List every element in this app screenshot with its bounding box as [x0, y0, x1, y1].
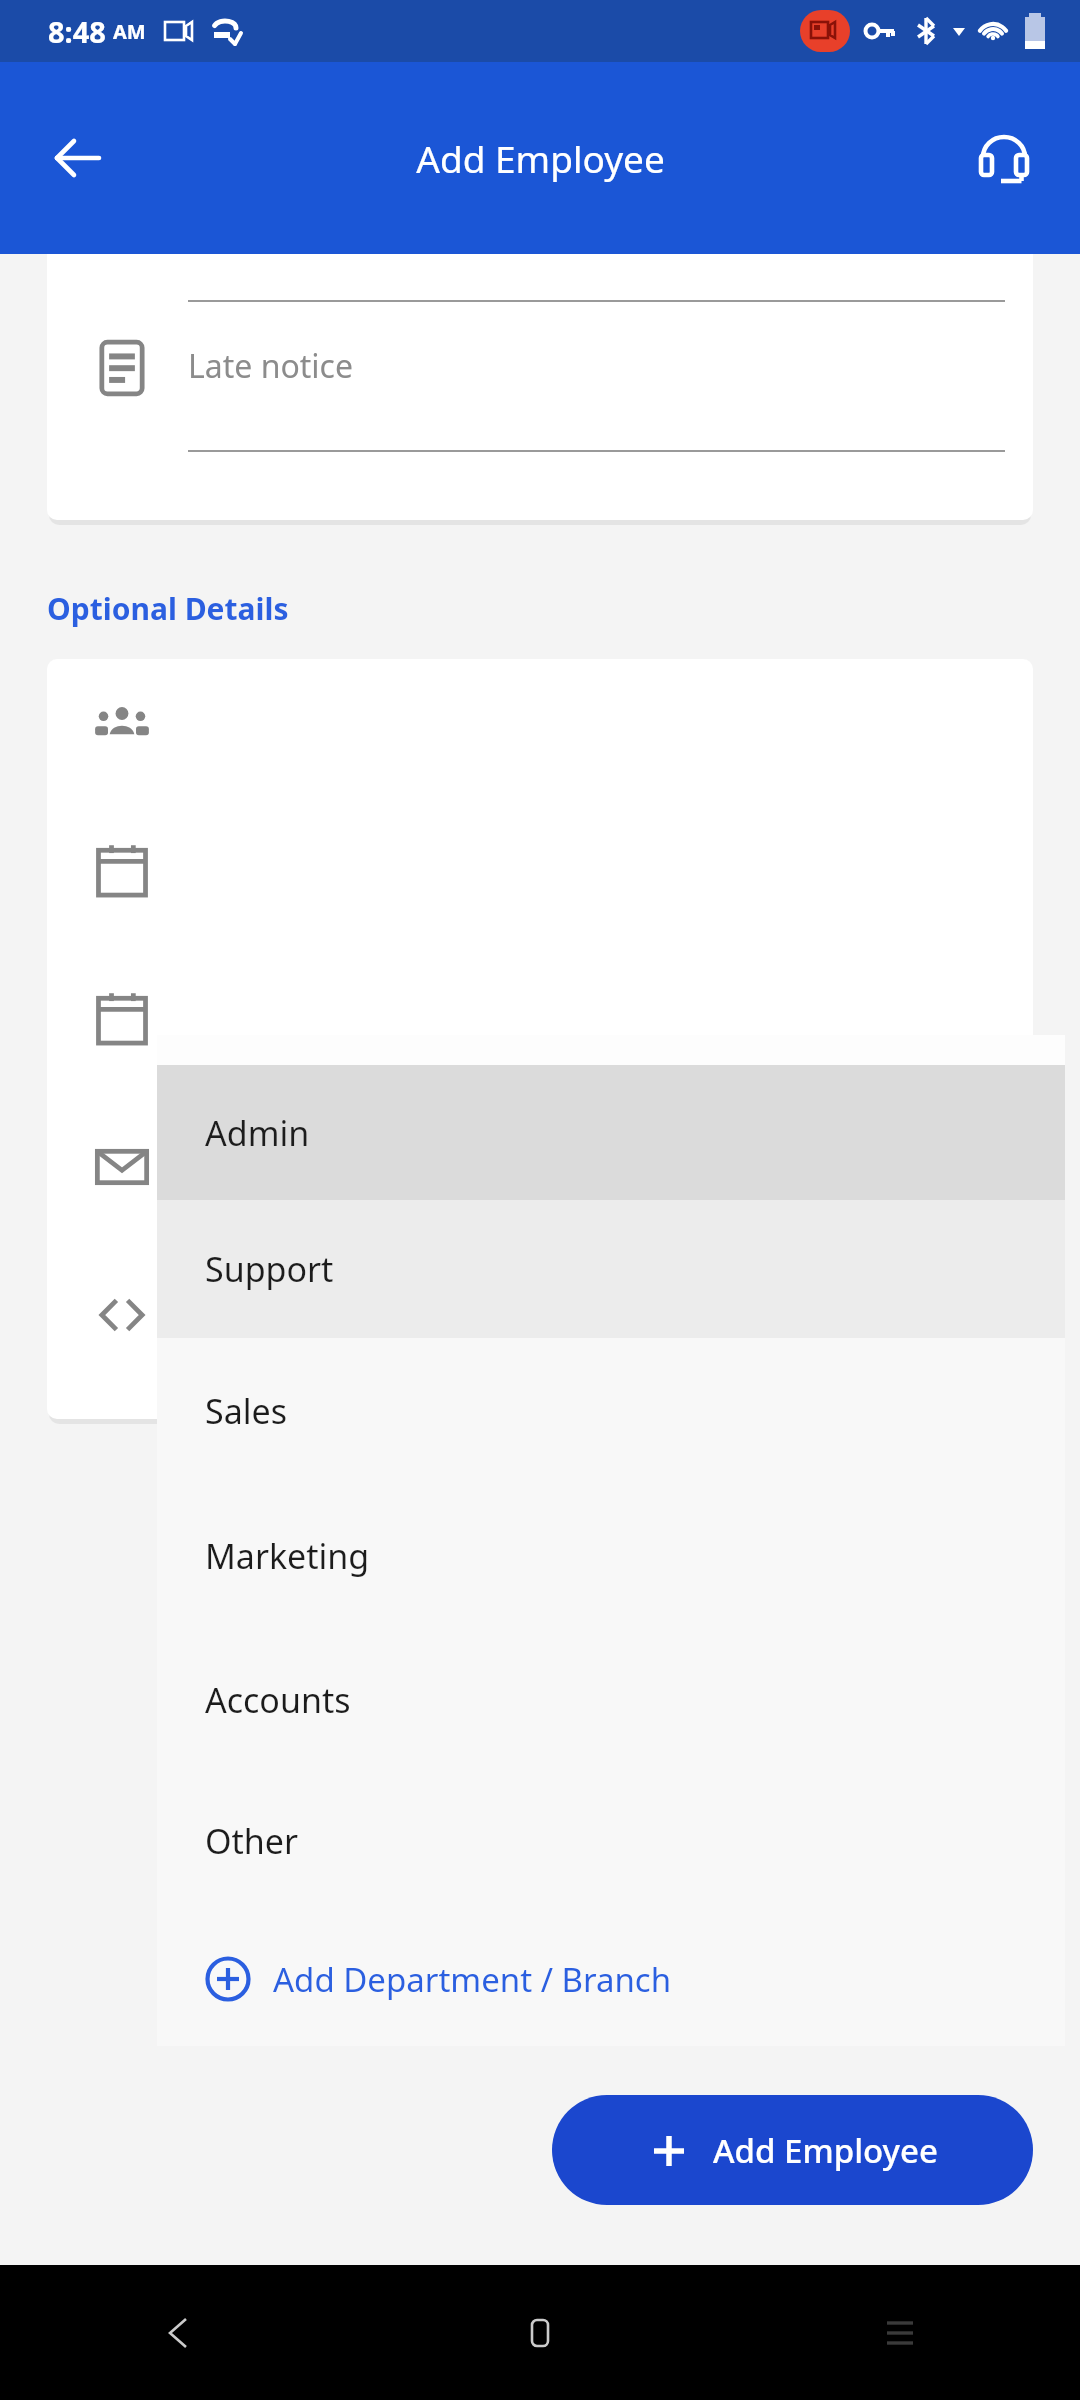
button[interactable]: Add Department / Branch [157, 1911, 1065, 2046]
staticText: AM [113, 18, 146, 45]
staticText: Optional Details [47, 588, 289, 629]
button[interactable]: Back [36, 116, 120, 200]
button[interactable]: Home [360, 2265, 720, 2400]
button[interactable]: Back [0, 2265, 360, 2400]
button[interactable]: Accounts [157, 1628, 1065, 1771]
staticText: Other [205, 1818, 299, 1864]
staticText: Admin [205, 1110, 310, 1156]
button[interactable]: Marketing [157, 1483, 1065, 1628]
button[interactable]: Add Employee [552, 2095, 1033, 2205]
staticText: 8:48 [48, 12, 106, 51]
staticText: Late notice [188, 344, 353, 388]
button[interactable]: Admin [157, 1065, 1065, 1200]
button[interactable]: Support headset [962, 116, 1046, 200]
button[interactable]: Sales [157, 1338, 1065, 1483]
staticText: Add Employee [416, 133, 665, 183]
button[interactable]: Other [157, 1771, 1065, 1911]
button[interactable]: Support [157, 1200, 1065, 1338]
staticText: Marketing [205, 1533, 370, 1579]
staticText: Add Employee [713, 2128, 938, 2173]
button[interactable]: Recent apps [720, 2265, 1080, 2400]
staticText: Sales [205, 1388, 287, 1434]
staticText: Add Department / Branch [273, 1957, 672, 2002]
staticText: Support [205, 1246, 334, 1292]
staticText: Accounts [205, 1677, 351, 1723]
